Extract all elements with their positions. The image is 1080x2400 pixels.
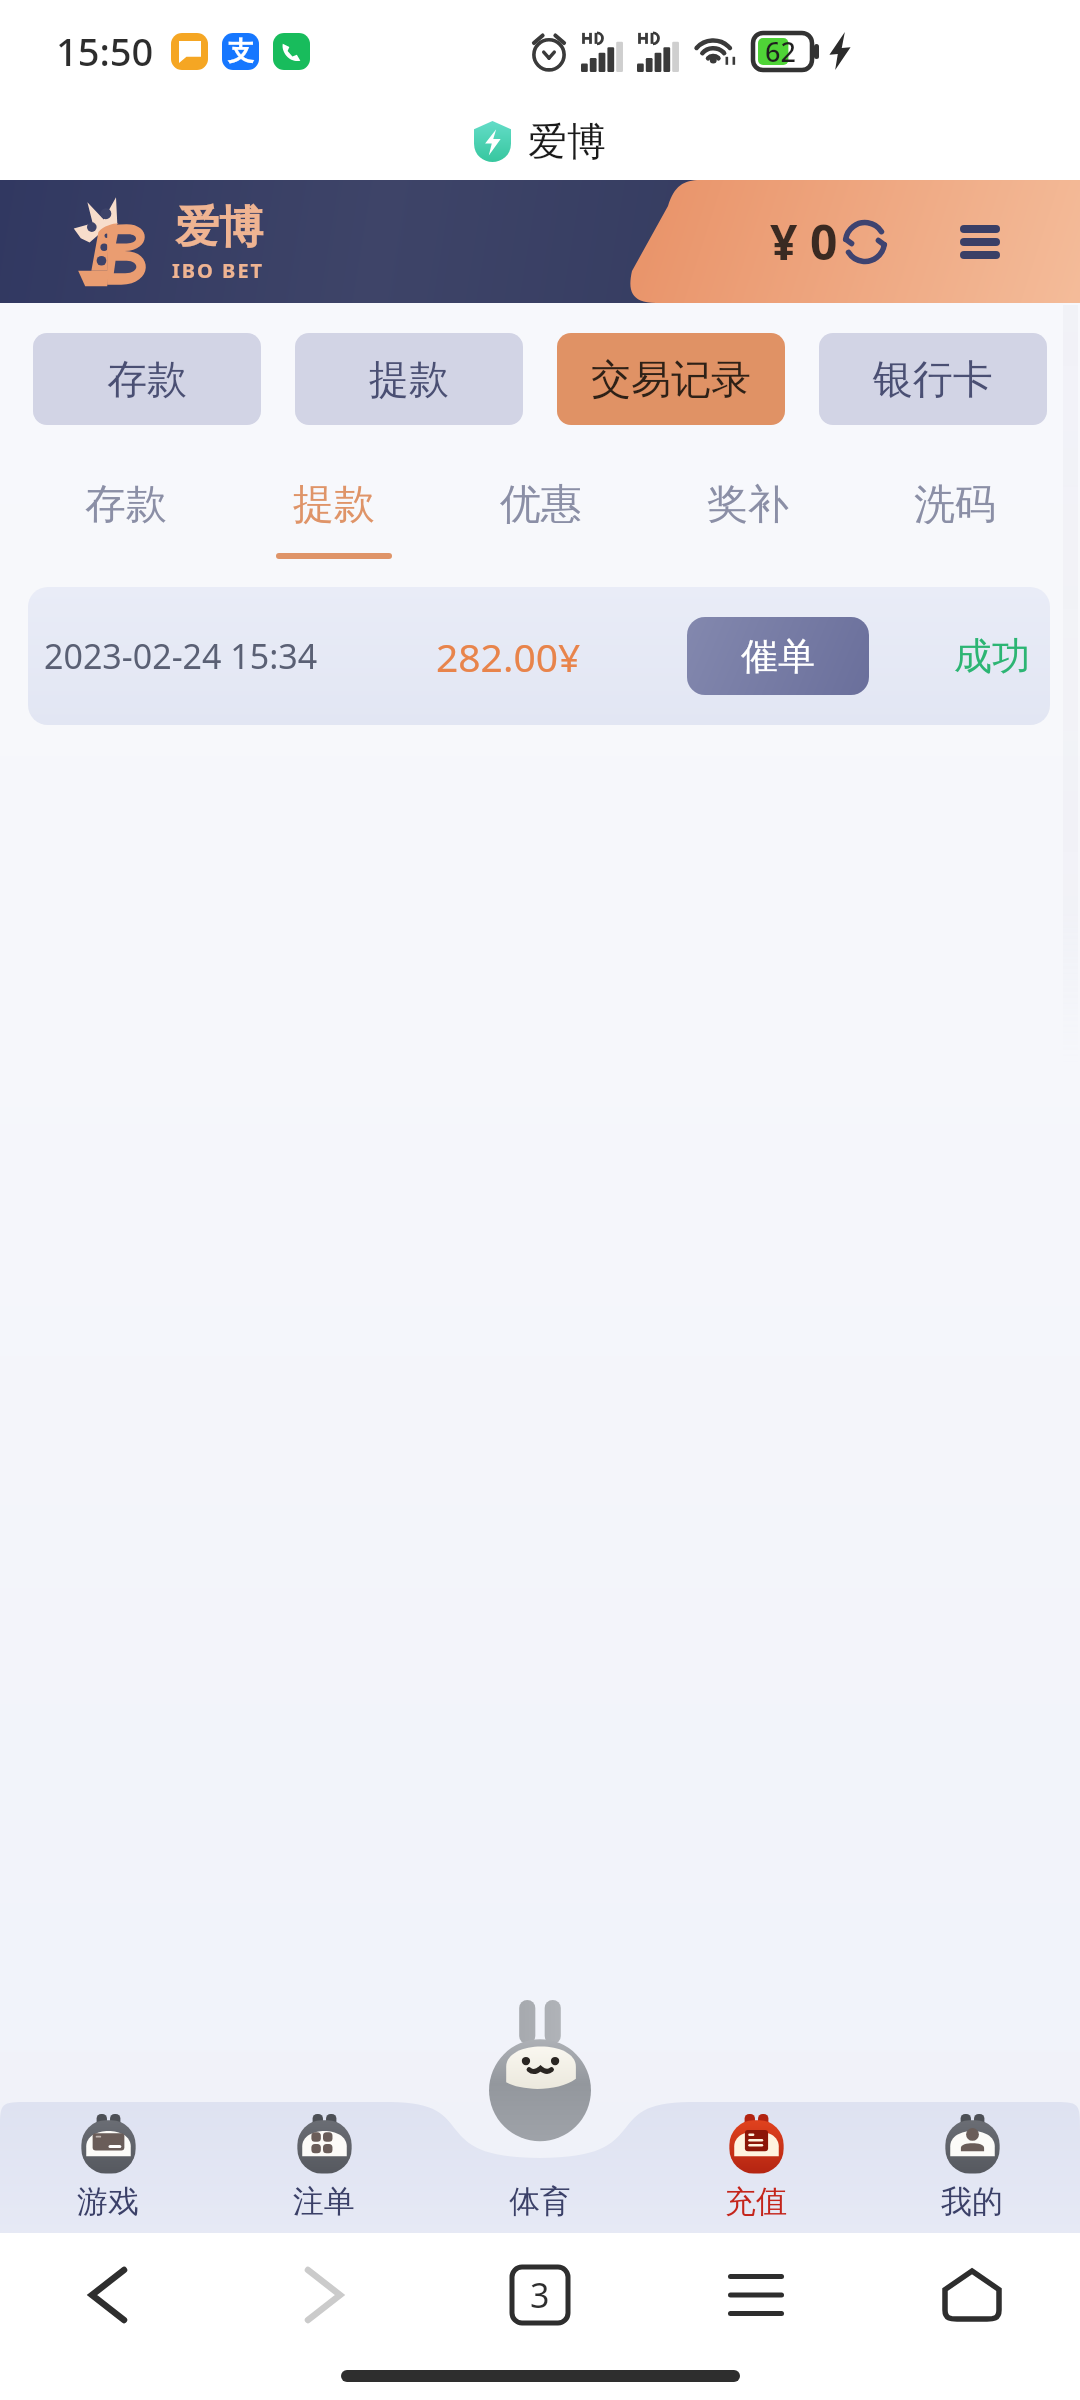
button[interactable]: 我的 (864, 2114, 1080, 2221)
button[interactable]: 体育 (432, 2114, 648, 2221)
button[interactable]: 银行卡 (819, 333, 1047, 425)
staticText: 3 (530, 2272, 550, 2318)
staticText: 2023-02-24 15:34 (44, 633, 318, 679)
button[interactable]: 提款 (295, 333, 523, 425)
button[interactable]: Tabs (432, 2245, 648, 2345)
button[interactable]: Home (864, 2245, 1080, 2345)
staticText: 交易记录 (591, 354, 751, 404)
button[interactable]: 催单 (687, 617, 869, 695)
staticText: 15:50 (56, 25, 154, 77)
staticText: 282.00¥ (436, 630, 581, 683)
staticText: 洗码 (914, 479, 996, 531)
staticText: 体育 (509, 2182, 571, 2221)
staticText: 游戏 (77, 2182, 139, 2221)
staticText: 爱博 (175, 200, 263, 255)
staticText: 存款 (107, 354, 187, 404)
button[interactable]: 注单 (216, 2114, 432, 2221)
staticText: 成功 (954, 632, 1030, 680)
staticText: 62 (765, 33, 796, 70)
button[interactable]: 奖补 (644, 451, 851, 560)
staticText: 充值 (725, 2182, 787, 2221)
button[interactable]: Back (0, 2245, 216, 2345)
button[interactable]: Browser menu (648, 2245, 864, 2345)
button[interactable]: 充值 (648, 2114, 864, 2221)
button[interactable]: 交易记录 (557, 333, 785, 425)
staticText: 奖补 (707, 479, 789, 531)
staticText: 提款 (293, 479, 375, 531)
staticText: 爱博 (528, 117, 606, 166)
staticText: 银行卡 (873, 354, 993, 404)
button[interactable]: 提款 (230, 451, 437, 560)
button[interactable]: 游戏 (0, 2114, 216, 2221)
staticText: IBO BET (172, 257, 265, 284)
staticText: 催单 (741, 633, 815, 680)
button[interactable]: Forward (216, 2245, 432, 2345)
staticText: 存款 (85, 479, 167, 531)
button[interactable]: 存款 (33, 333, 261, 425)
staticText: ¥ 0 (770, 209, 838, 274)
button[interactable]: 优惠 (437, 451, 644, 560)
staticText: 优惠 (500, 479, 582, 531)
staticText: 我的 (941, 2182, 1003, 2221)
button[interactable]: 体育 (488, 2000, 592, 2142)
staticText: 提款 (369, 354, 449, 404)
staticText: 支 (228, 35, 254, 68)
button[interactable]: 2023-02-24 15:34 (28, 587, 1050, 725)
staticText: 注单 (293, 2182, 355, 2221)
button[interactable]: ¥ 0 (762, 199, 900, 284)
button[interactable]: 洗码 (851, 451, 1058, 560)
button[interactable]: Menu (942, 204, 1018, 280)
button[interactable]: 存款 (22, 451, 230, 560)
